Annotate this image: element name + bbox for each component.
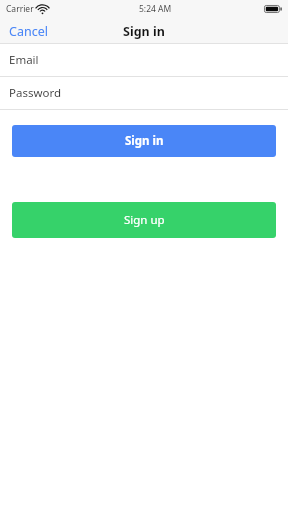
staticText: Cancel <box>9 23 48 40</box>
staticText: Sign in <box>123 23 165 40</box>
staticText: Email <box>9 52 39 68</box>
button[interactable]: Sign up <box>12 202 276 238</box>
staticText: Carrier <box>6 3 34 15</box>
staticText: Sign up <box>124 212 165 228</box>
staticText: Sign in <box>125 133 164 149</box>
staticText: 5:24 AM <box>139 3 172 15</box>
button[interactable]: Password <box>0 77 288 109</box>
button[interactable]: Email <box>0 44 288 76</box>
other: Wi-Fi signal <box>37 5 48 14</box>
staticText: Password <box>9 85 62 101</box>
button[interactable]: Cancel <box>0 19 56 44</box>
button[interactable]: Sign in <box>12 125 276 157</box>
other: Battery full <box>264 5 282 13</box>
